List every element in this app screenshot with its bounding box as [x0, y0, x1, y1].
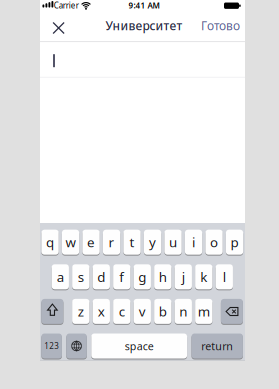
- staticText: 123: [44, 341, 59, 351]
- button[interactable]: Готово: [198, 16, 242, 36]
- button[interactable]: r: [103, 229, 120, 255]
- staticText: t: [130, 233, 135, 251]
- button[interactable]: e: [82, 229, 100, 255]
- button[interactable]: f: [113, 264, 130, 290]
- button[interactable]: m: [195, 298, 212, 324]
- button[interactable]: a: [52, 264, 69, 290]
- button[interactable]: [49, 18, 68, 38]
- staticText: m: [198, 302, 210, 320]
- staticText: r: [108, 233, 114, 251]
- button[interactable]: l: [216, 264, 233, 290]
- button[interactable]: h: [154, 264, 171, 290]
- staticText: c: [119, 302, 125, 320]
- staticText: k: [200, 268, 207, 286]
- button[interactable]: j: [175, 264, 192, 290]
- staticText: Готово: [201, 18, 240, 33]
- button[interactable]: [66, 333, 87, 359]
- staticText: s: [78, 268, 84, 286]
- button[interactable]: space: [91, 333, 187, 359]
- button[interactable]: q: [41, 229, 59, 255]
- button[interactable]: [41, 298, 63, 324]
- staticText: z: [78, 302, 84, 320]
- staticText: l: [223, 268, 226, 286]
- button[interactable]: [221, 298, 243, 324]
- staticText: i: [192, 233, 195, 251]
- staticText: return: [201, 339, 233, 353]
- button[interactable]: n: [175, 298, 192, 324]
- button[interactable]: 123: [41, 333, 62, 359]
- button[interactable]: return: [191, 333, 243, 359]
- staticText: b: [159, 302, 167, 320]
- staticText: e: [87, 233, 95, 251]
- staticText: w: [65, 233, 75, 251]
- button[interactable]: z: [72, 298, 89, 324]
- button[interactable]: k: [195, 264, 212, 290]
- staticText: d: [97, 268, 105, 286]
- staticText: n: [179, 302, 187, 320]
- staticText: space: [125, 339, 154, 353]
- button[interactable]: w: [62, 229, 79, 255]
- button[interactable]: b: [154, 298, 171, 324]
- button[interactable]: t: [123, 229, 141, 255]
- button[interactable]: y: [144, 229, 161, 255]
- staticText: y: [149, 233, 156, 251]
- staticText: v: [139, 302, 146, 320]
- staticText: f: [119, 268, 124, 286]
- staticText: q: [46, 233, 54, 251]
- staticText: Carrier: [54, 0, 79, 11]
- button[interactable]: u: [164, 229, 182, 255]
- staticText: g: [138, 268, 146, 286]
- button[interactable]: i: [185, 229, 202, 255]
- button[interactable]: d: [93, 264, 110, 290]
- staticText: j: [182, 268, 185, 286]
- staticText: Университет: [105, 18, 182, 33]
- button[interactable]: s: [72, 264, 89, 290]
- staticText: 9:41 AM: [128, 0, 159, 11]
- button[interactable]: c: [113, 298, 130, 324]
- button[interactable]: g: [134, 264, 151, 290]
- button[interactable]: o: [205, 229, 223, 255]
- staticText: a: [57, 268, 64, 286]
- staticText: h: [159, 268, 167, 286]
- button[interactable]: x: [93, 298, 110, 324]
- staticText: p: [231, 233, 239, 251]
- staticText: x: [98, 302, 105, 320]
- staticText: o: [210, 233, 218, 251]
- button[interactable]: v: [134, 298, 151, 324]
- staticText: u: [169, 233, 177, 251]
- button[interactable]: p: [226, 229, 243, 255]
